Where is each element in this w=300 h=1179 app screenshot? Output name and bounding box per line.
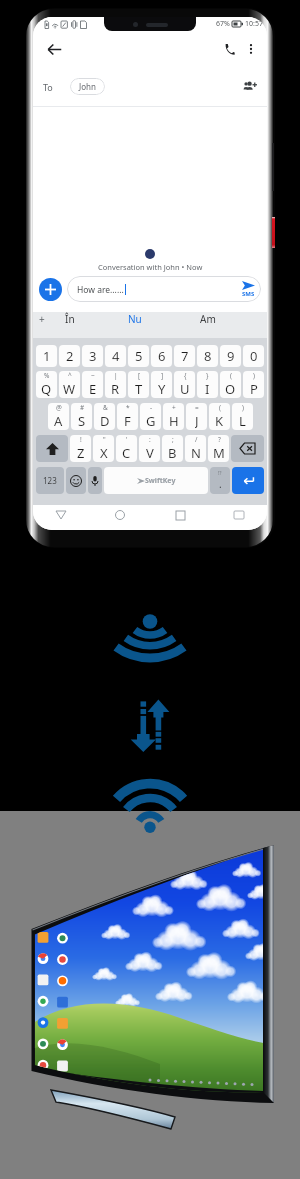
button[interactable]: ' — [116, 435, 137, 462]
staticText: + — [172, 403, 176, 412]
button[interactable]: 5 — [128, 345, 149, 367]
staticText: O — [225, 380, 236, 397]
staticText: } — [206, 371, 209, 380]
button[interactable]: % — [36, 371, 57, 398]
staticText: - — [150, 403, 153, 412]
staticText: [ — [138, 371, 141, 380]
button[interactable]: ! — [70, 435, 91, 462]
button[interactable]: | — [105, 371, 126, 398]
staticText: 0 — [250, 347, 258, 365]
button[interactable]: How are...... — [67, 276, 261, 302]
staticText: 2 — [66, 347, 74, 365]
button[interactable]: 4 — [105, 345, 126, 367]
staticText: I — [205, 380, 210, 397]
staticText: V — [146, 444, 154, 461]
button[interactable]: Comma — [88, 467, 102, 494]
staticText: M — [213, 444, 225, 461]
staticText: 5 — [135, 347, 143, 365]
button[interactable]: More options — [240, 38, 262, 60]
button[interactable]: 7 — [174, 345, 195, 367]
button[interactable]: Back — [42, 37, 66, 61]
button[interactable]: : — [139, 435, 160, 462]
button[interactable]: 1 — [36, 345, 57, 367]
staticText: K — [215, 412, 224, 429]
staticText: F — [124, 412, 131, 429]
button[interactable]: Recents — [170, 505, 190, 525]
staticText: !? — [218, 470, 222, 477]
staticText: . — [219, 477, 222, 491]
staticText: H — [169, 412, 179, 429]
staticText: ( — [219, 403, 221, 412]
button[interactable]: } — [197, 371, 218, 398]
button[interactable]: Enter — [232, 467, 264, 494]
staticText: Q — [41, 380, 52, 397]
staticText: 67% — [216, 19, 230, 29]
button[interactable]: Home — [110, 505, 130, 525]
button[interactable]: Hide keyboard — [229, 505, 249, 525]
button[interactable]: = — [186, 403, 207, 430]
button[interactable]: Emoji — [66, 467, 86, 494]
button[interactable]: Space — [104, 467, 208, 494]
button[interactable]: 0 — [243, 345, 264, 367]
staticText: / — [195, 435, 198, 444]
button[interactable]: - — [140, 403, 161, 430]
button[interactable]: # — [71, 403, 92, 430]
button[interactable]: Add people — [239, 76, 261, 98]
staticText: 9 — [227, 347, 235, 365]
button[interactable]: ( — [209, 403, 230, 430]
button[interactable]: ^ — [59, 371, 80, 398]
button[interactable]: Backspace — [231, 435, 264, 462]
button[interactable]: Attach — [39, 278, 62, 301]
button[interactable]: ~ — [82, 371, 103, 398]
staticText: Conversation with John • Now — [98, 262, 203, 272]
button[interactable]: @ — [48, 403, 69, 430]
button[interactable]: " — [93, 435, 114, 462]
button[interactable]: 2 — [59, 345, 80, 367]
button[interactable]: John — [70, 78, 105, 95]
staticText: Nu — [128, 312, 142, 326]
staticText: În — [65, 312, 75, 326]
button[interactable]: 8 — [197, 345, 218, 367]
button[interactable]: & — [94, 403, 115, 430]
button[interactable]: / — [185, 435, 206, 462]
staticText: E — [89, 380, 97, 397]
button[interactable]: { — [174, 371, 195, 398]
button[interactable]: ; — [162, 435, 183, 462]
staticText: ~ — [91, 371, 95, 380]
button[interactable]: Shift — [36, 435, 68, 462]
staticText: G — [146, 412, 156, 429]
staticText: J — [195, 412, 199, 429]
staticText: ( — [230, 371, 232, 380]
staticText: Y — [158, 380, 166, 397]
staticText: W — [63, 380, 76, 397]
button[interactable]: ) — [232, 403, 253, 430]
button[interactable]: ] — [151, 371, 172, 398]
staticText: ? — [218, 435, 221, 444]
staticText: ' — [126, 435, 128, 444]
staticText: ) — [253, 371, 255, 380]
button[interactable]: Call — [218, 38, 240, 60]
button[interactable]: + — [163, 403, 184, 430]
button[interactable]: ) — [243, 371, 264, 398]
button[interactable]: * — [117, 403, 138, 430]
button[interactable]: Back — [51, 505, 71, 525]
button[interactable]: 3 — [82, 345, 103, 367]
button[interactable]: Period — [210, 467, 230, 494]
button[interactable]: Numbers — [36, 467, 64, 494]
staticText: N — [191, 444, 201, 461]
staticText: # — [80, 403, 85, 412]
button[interactable]: 9 — [220, 345, 241, 367]
staticText: { — [184, 371, 187, 380]
staticText: = — [195, 403, 199, 412]
staticText: " — [103, 435, 106, 444]
button[interactable]: 6 — [151, 345, 172, 367]
staticText: P — [250, 380, 258, 397]
staticText: @ — [56, 403, 62, 412]
button[interactable]: ( — [220, 371, 241, 398]
button[interactable]: ? — [208, 435, 229, 462]
staticText: How are...... — [77, 284, 124, 296]
staticText: ) — [242, 403, 244, 412]
button[interactable]: [ — [128, 371, 149, 398]
staticText: 10:57 — [245, 19, 263, 29]
staticText: To — [43, 81, 53, 93]
